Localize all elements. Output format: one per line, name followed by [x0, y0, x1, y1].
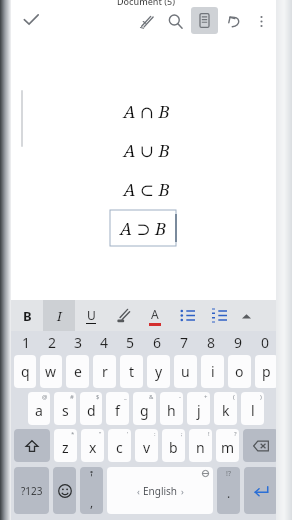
staticText: s: [62, 401, 69, 420]
button[interactable]: (: [214, 392, 237, 425]
button[interactable]: ;: [162, 429, 185, 462]
staticText: 8: [207, 333, 216, 352]
button[interactable]: Backspace: [243, 429, 278, 462]
button[interactable]: Comma and voice: [80, 467, 103, 514]
button[interactable]: $: [80, 392, 102, 425]
button[interactable]: 8: [198, 331, 225, 353]
staticText: m: [221, 438, 235, 457]
button[interactable]: w: [40, 355, 62, 388]
staticText: b: [169, 438, 178, 457]
staticText: a: [35, 401, 43, 420]
button[interactable]: Undo: [221, 8, 247, 34]
button[interactable]: p: [255, 355, 278, 388]
staticText: v: [143, 438, 151, 457]
button[interactable]: 1: [13, 331, 39, 353]
button[interactable]: q: [14, 355, 36, 388]
staticText: 6: [153, 333, 162, 352]
staticText: .: [227, 485, 231, 501]
staticText: t: [129, 362, 135, 381]
staticText: (: [233, 393, 235, 401]
button[interactable]: 4: [91, 331, 117, 353]
staticText: l: [251, 401, 255, 420]
button[interactable]: 0: [252, 331, 279, 353]
button[interactable]: +: [187, 392, 210, 425]
staticText: g: [140, 401, 149, 420]
button[interactable]: Numbered list: [203, 300, 235, 331]
button[interactable]: Shift: [14, 429, 50, 462]
staticText: o: [235, 362, 244, 381]
button[interactable]: Underline: [75, 300, 107, 331]
button[interactable]: Done: [14, 3, 48, 37]
staticText: 5: [126, 333, 135, 352]
button[interactable]: 6: [144, 331, 171, 353]
staticText: u: [181, 362, 190, 381]
staticText: 0: [261, 333, 270, 352]
staticText: r: [102, 362, 108, 381]
button[interactable]: Pen: [133, 8, 159, 34]
button[interactable]: 5: [117, 331, 144, 353]
button[interactable]: More options: [248, 8, 274, 34]
staticText: A ⊂ B: [123, 178, 170, 201]
button[interactable]: ): [241, 392, 264, 425]
staticText: n: [196, 438, 205, 457]
button[interactable]: t: [120, 355, 143, 388]
staticText: 1: [22, 333, 31, 352]
button[interactable]: Period: [217, 467, 240, 514]
button[interactable]: A ⊃ B: [110, 210, 176, 246]
staticText: p: [262, 362, 271, 381]
button[interactable]: Emoji: [53, 467, 76, 514]
staticText: ?123: [21, 484, 43, 498]
button[interactable]: @: [28, 392, 50, 425]
button[interactable]: Symbols: [14, 467, 49, 514]
button[interactable]: ': [108, 429, 131, 462]
staticText: -: [179, 393, 181, 401]
button[interactable]: Enter: [244, 467, 278, 514]
button[interactable]: Bold: [11, 300, 43, 331]
staticText: Document (5): [117, 0, 176, 7]
staticText: ": [99, 430, 102, 438]
staticText: :: [154, 430, 156, 438]
button[interactable]: 2: [39, 331, 65, 353]
staticText: @: [42, 393, 48, 401]
button[interactable]: &: [133, 392, 156, 425]
button[interactable]: 7: [171, 331, 198, 353]
staticText: !?: [226, 469, 231, 479]
button[interactable]: u: [174, 355, 197, 388]
button[interactable]: i: [201, 355, 224, 388]
button[interactable]: Voice input: [237, 301, 273, 337]
staticText: $: [96, 393, 100, 401]
button[interactable]: r: [93, 355, 116, 388]
button[interactable]: -: [160, 392, 183, 425]
button[interactable]: y: [147, 355, 170, 388]
button[interactable]: #: [54, 392, 76, 425]
button[interactable]: _: [106, 392, 129, 425]
button[interactable]: Bulleted list: [171, 300, 203, 331]
staticText: q: [21, 362, 30, 381]
button[interactable]: Reading view: [191, 7, 218, 34]
button[interactable]: ‹: [107, 467, 213, 514]
button[interactable]: *: [54, 429, 77, 462]
button[interactable]: Search: [162, 8, 188, 34]
staticText: +: [204, 393, 208, 401]
button[interactable]: :: [135, 429, 158, 462]
button[interactable]: !: [189, 429, 212, 462]
staticText: B: [23, 307, 32, 325]
staticText: A: [151, 306, 159, 322]
button[interactable]: ?: [216, 429, 239, 462]
staticText: ‹: [137, 485, 140, 497]
button[interactable]: e: [66, 355, 89, 388]
staticText: ': [127, 430, 129, 438]
button[interactable]: Highlight: [107, 300, 139, 331]
button[interactable]: Italic: [43, 300, 75, 331]
button[interactable]: Collapse toolbar: [235, 305, 257, 327]
button[interactable]: 9: [225, 331, 252, 353]
staticText: x: [89, 438, 97, 457]
staticText: 2: [48, 333, 57, 352]
staticText: 3: [74, 333, 83, 352]
staticText: h: [167, 401, 176, 420]
staticText: k: [222, 401, 230, 420]
button[interactable]: ": [81, 429, 104, 462]
button[interactable]: 3: [65, 331, 91, 353]
button[interactable]: o: [228, 355, 251, 388]
button[interactable]: Font colour: [139, 300, 171, 331]
